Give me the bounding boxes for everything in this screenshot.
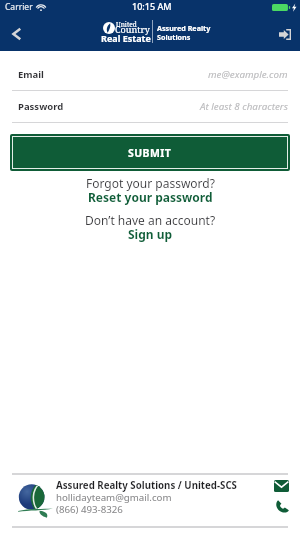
staticText: Email — [18, 68, 44, 81]
staticText: Real Estate — [101, 32, 151, 44]
button[interactable]: Password — [0, 91, 300, 122]
staticText: Sign up — [128, 228, 173, 242]
staticText: (866) 493-8326 — [56, 503, 123, 515]
staticText: hollidayteam@gmail.com — [56, 491, 172, 503]
staticText: Assured Realty Solutions / United-SCS — [56, 479, 237, 491]
staticText: Password — [18, 100, 64, 113]
button[interactable]: Call — [268, 496, 293, 513]
staticText: Don’t have an account? — [85, 214, 216, 228]
staticText: Carrier — [5, 3, 33, 12]
staticText: United — [116, 20, 137, 29]
staticText: Reset your password — [88, 191, 213, 205]
staticText: Assured Realty — [157, 24, 211, 33]
button[interactable]: SUBMIT — [12, 136, 288, 169]
button[interactable]: Email — [0, 59, 300, 90]
staticText: Solutions — [157, 33, 191, 42]
staticText: Country — [115, 23, 150, 35]
button[interactable]: Log in — [268, 17, 300, 51]
staticText: me@example.com — [208, 68, 288, 81]
button[interactable]: Back — [0, 17, 33, 51]
button[interactable]: Sign up — [128, 228, 173, 242]
staticText: Forgot your password? — [86, 177, 215, 191]
staticText: 10:15 AM — [132, 3, 172, 12]
button[interactable]: Email — [268, 476, 293, 493]
staticText: SUBMIT — [128, 146, 172, 160]
button[interactable]: Reset your password — [88, 191, 213, 205]
staticText: At least 8 characters — [200, 100, 288, 113]
